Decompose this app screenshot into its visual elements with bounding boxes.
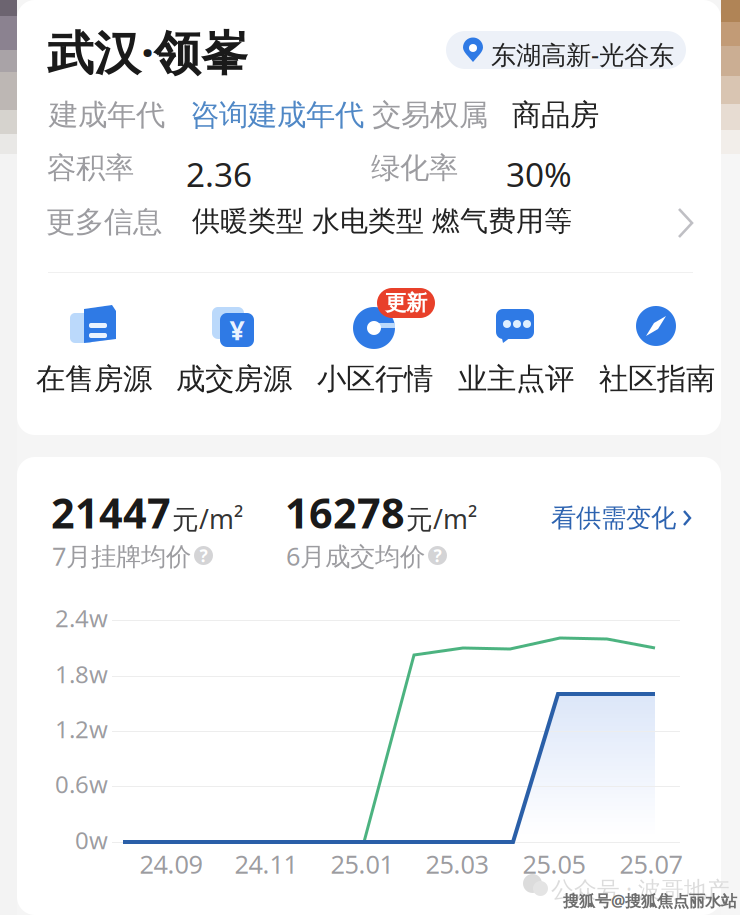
staticText: 2.36 xyxy=(186,152,252,196)
staticText: 绿化率 xyxy=(371,150,458,186)
staticText: 25.05 xyxy=(522,847,585,881)
staticText: 社区指南 xyxy=(599,361,715,397)
staticText: 公众号 · 波哥地产 xyxy=(551,874,730,904)
staticText: 商品房 xyxy=(512,97,599,133)
staticText: 21447 xyxy=(51,485,171,540)
staticText: 16278 xyxy=(285,485,405,540)
staticText: 建成年代 xyxy=(49,97,165,133)
button[interactable]: 东湖高新-光谷东 xyxy=(446,31,686,69)
staticText: 1.8w xyxy=(55,658,108,690)
button[interactable]: 看供需变化 xyxy=(551,503,691,533)
staticText: 更多信息 xyxy=(46,204,162,240)
button[interactable]: 社区指南 xyxy=(587,300,727,398)
staticText: 7月挂牌均价 xyxy=(52,539,191,573)
staticText: 25.07 xyxy=(619,847,682,881)
staticText: 0.6w xyxy=(55,768,108,800)
staticText: 武汉·领峯 xyxy=(47,21,248,83)
staticText: 元/m² xyxy=(172,501,243,536)
staticText: 元/m² xyxy=(406,501,477,536)
button[interactable]: ¥ xyxy=(164,300,304,398)
staticText: 在售房源 xyxy=(36,361,152,397)
staticText: 看供需变化 xyxy=(551,502,676,533)
staticText: 业主点评 xyxy=(458,361,574,397)
staticText: 0w xyxy=(75,824,108,856)
staticText: ? xyxy=(433,544,441,567)
staticText: 成交房源 xyxy=(176,361,292,397)
staticText: 搜狐号@搜狐焦点丽水站 xyxy=(563,890,737,911)
staticText: 供暖类型 水电类型 燃气费用等 xyxy=(192,204,572,238)
staticText: 容积率 xyxy=(47,150,134,186)
staticText: 更新 xyxy=(385,290,427,316)
staticText: 25.03 xyxy=(425,847,488,881)
staticText: 咨询建成年代 xyxy=(190,97,364,133)
staticText: 6月成交均价 xyxy=(286,539,425,573)
staticText: 2.4w xyxy=(55,602,108,634)
staticText: 小区行情 xyxy=(317,361,433,397)
staticText: 25.01 xyxy=(330,847,393,881)
staticText: 东湖高新-光谷东 xyxy=(491,38,674,71)
button[interactable]: 小区行情 xyxy=(305,300,445,398)
staticText: 24.09 xyxy=(139,847,202,881)
staticText: ? xyxy=(199,544,207,567)
staticText: 30% xyxy=(506,152,572,196)
staticText: 1.2w xyxy=(55,713,108,745)
staticText: 交易权属 xyxy=(372,97,488,133)
button[interactable]: 业主点评 xyxy=(446,300,586,398)
button[interactable]: 在售房源 xyxy=(24,300,164,398)
staticText: ¥ xyxy=(229,312,244,348)
staticText: 24.11 xyxy=(234,847,297,881)
